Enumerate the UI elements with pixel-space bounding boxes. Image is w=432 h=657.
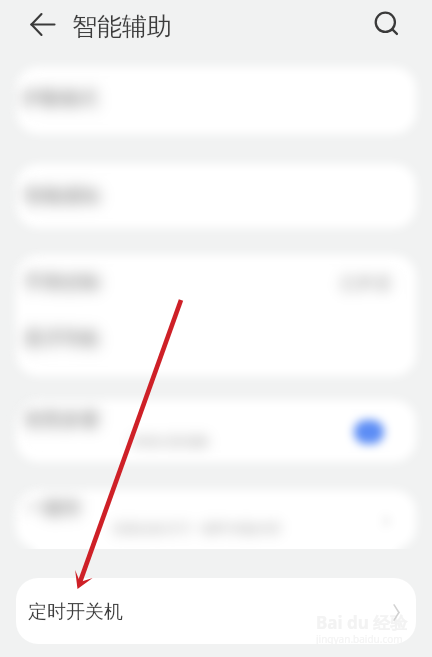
button[interactable]: 一碰传 — [16, 490, 416, 549]
button[interactable]: 手势控制 — [16, 255, 416, 376]
staticText: jingyan.baidu.com — [316, 632, 403, 644]
button[interactable]: Search — [363, 0, 411, 48]
button[interactable]: 护眼模式 — [16, 67, 416, 134]
button[interactable]: 智慧多窗 — [16, 400, 416, 462]
staticText: 定时开关机 — [28, 600, 123, 624]
button[interactable]: Toggle — [354, 420, 384, 444]
staticText: 智能感知 — [24, 184, 100, 208]
staticText: 已开启 — [340, 273, 391, 294]
staticText: 护眼模式 — [22, 87, 98, 111]
staticText: 手势控制 — [24, 271, 100, 295]
staticText: 智能识屏提醒 — [131, 433, 209, 449]
staticText: 悬浮导航 — [24, 327, 100, 351]
button[interactable]: 智能感知 — [16, 164, 416, 228]
staticText: 一碰传 — [24, 496, 81, 520]
staticText: Bai du 经验 — [316, 611, 408, 634]
button[interactable]: 定时开关机 — [16, 578, 416, 644]
button[interactable]: Back — [18, 0, 66, 48]
staticText: 连接设备后可一碰即传输内容 — [112, 520, 281, 536]
staticText: 智慧多窗 — [24, 408, 100, 432]
staticText: 智能辅助 — [72, 11, 172, 42]
